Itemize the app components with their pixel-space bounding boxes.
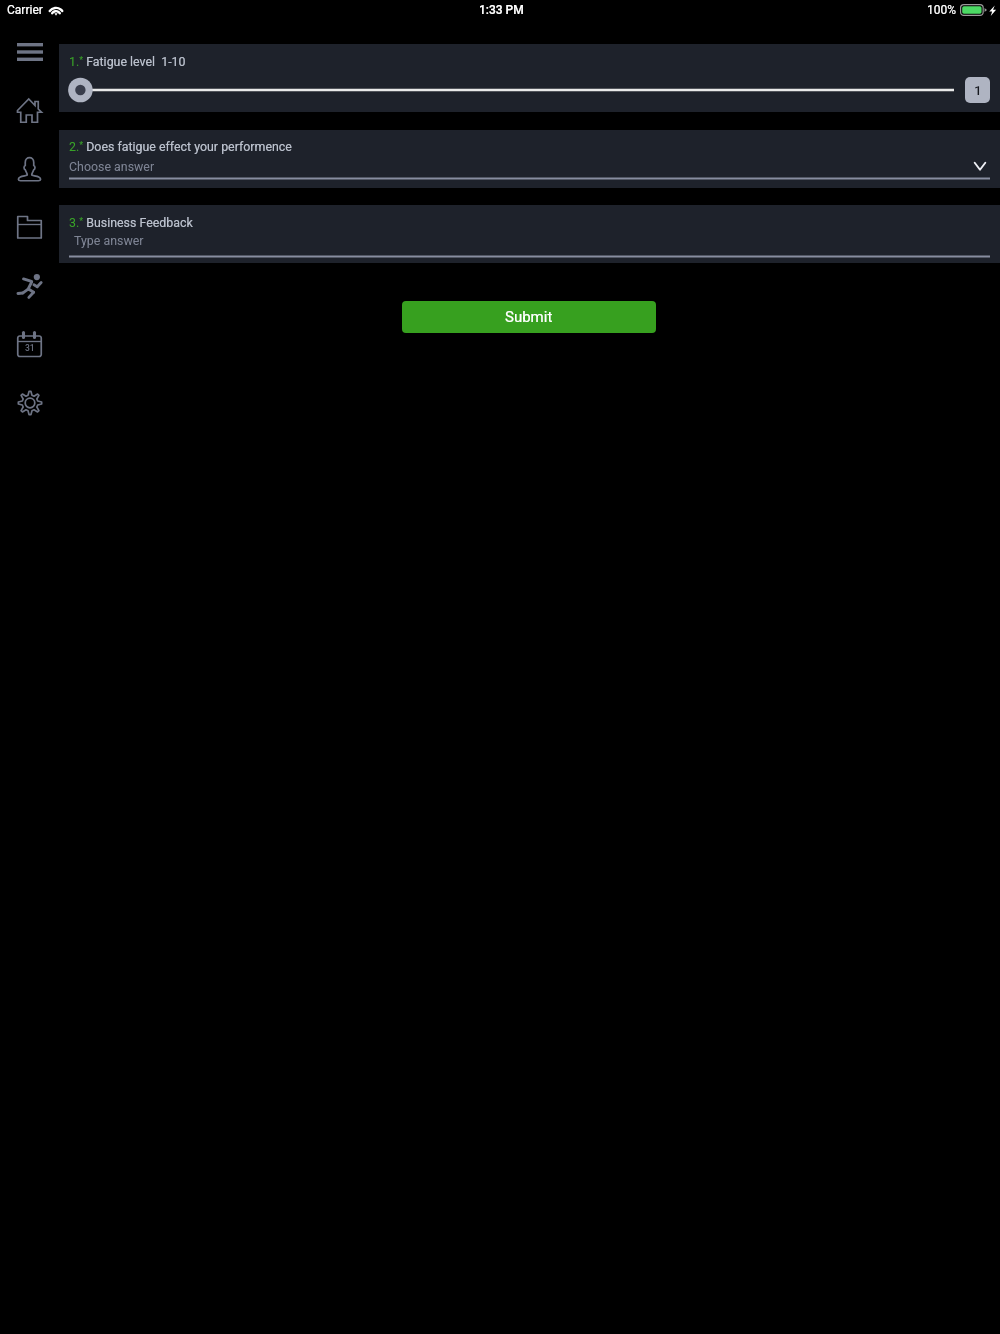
staticText: Type answer — [74, 233, 144, 248]
button[interactable]: Settings — [0, 381, 59, 425]
button[interactable]: Files — [0, 204, 59, 248]
button[interactable]: Menu — [0, 30, 59, 74]
staticText: Choose answer — [69, 159, 155, 174]
button[interactable]: 1.* Fatigue level 1-10 — [59, 44, 1000, 112]
button[interactable]: Choose answer — [69, 154, 990, 182]
staticText: 1:33 PM — [479, 3, 524, 17]
button[interactable]: Activity — [0, 263, 59, 307]
staticText: 1.* Fatigue level 1-10 — [69, 54, 186, 69]
button[interactable]: 1 — [965, 77, 990, 103]
staticText: 31 — [25, 343, 35, 353]
staticText: 2.* Does fatigue effect your performence — [69, 139, 292, 154]
button[interactable]: Submit — [402, 301, 656, 333]
staticText: 3.* Business Feedback — [69, 215, 193, 230]
button[interactable]: Calendar — [0, 322, 59, 366]
button[interactable]: Type answer — [69, 230, 990, 259]
staticText: Submit — [505, 308, 553, 326]
button[interactable]: Profile — [0, 146, 59, 190]
button[interactable]: Home — [0, 88, 59, 132]
staticText: 1 — [974, 82, 982, 98]
staticText: Carrier — [7, 3, 43, 17]
staticText: 100% — [927, 3, 957, 17]
